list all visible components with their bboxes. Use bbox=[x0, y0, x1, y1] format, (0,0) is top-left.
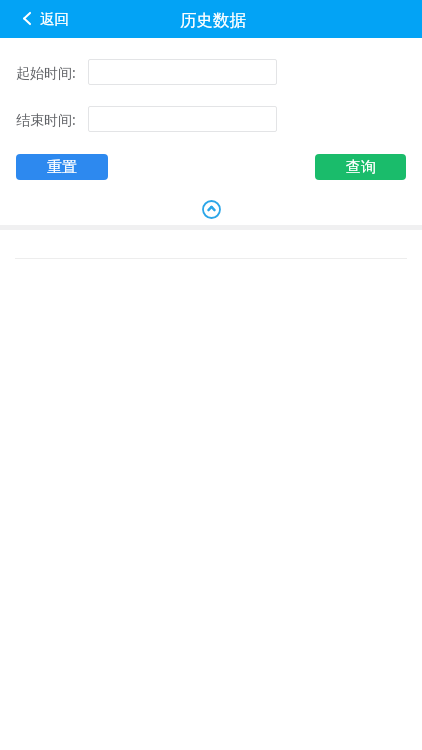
button[interactable]: 重置 bbox=[16, 154, 108, 180]
staticText: 起始时间: bbox=[16, 63, 76, 82]
staticText: 结束时间: bbox=[16, 110, 76, 129]
staticText: 重置 bbox=[47, 158, 77, 177]
staticText: 查询 bbox=[346, 158, 376, 177]
staticText: 返回 bbox=[40, 10, 69, 28]
button[interactable]: 起始时间: bbox=[88, 59, 277, 85]
button[interactable]: 结束时间: bbox=[88, 106, 277, 132]
staticText: 历史数据 bbox=[180, 10, 246, 31]
button[interactable]: 查询 bbox=[315, 154, 406, 180]
button[interactable]: Collapse filters bbox=[202, 200, 221, 219]
button[interactable]: 返回 bbox=[0, 4, 83, 34]
